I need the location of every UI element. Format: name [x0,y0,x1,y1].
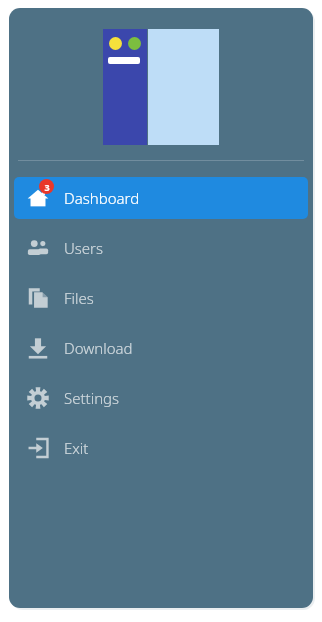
staticText: Exit [64,438,89,458]
button[interactable]: Download [9,323,313,373]
staticText: Dashboard [64,188,140,208]
staticText: Settings [64,388,120,408]
staticText: 3 [44,181,50,193]
staticText: Download [64,338,133,358]
button[interactable]: Settings [9,373,313,423]
staticText: Files [64,288,94,308]
button[interactable]: 3 [9,173,313,223]
staticText: Users [64,238,104,258]
button[interactable]: Files [9,273,313,323]
button[interactable]: Exit [9,423,313,473]
button[interactable]: Users [9,223,313,273]
